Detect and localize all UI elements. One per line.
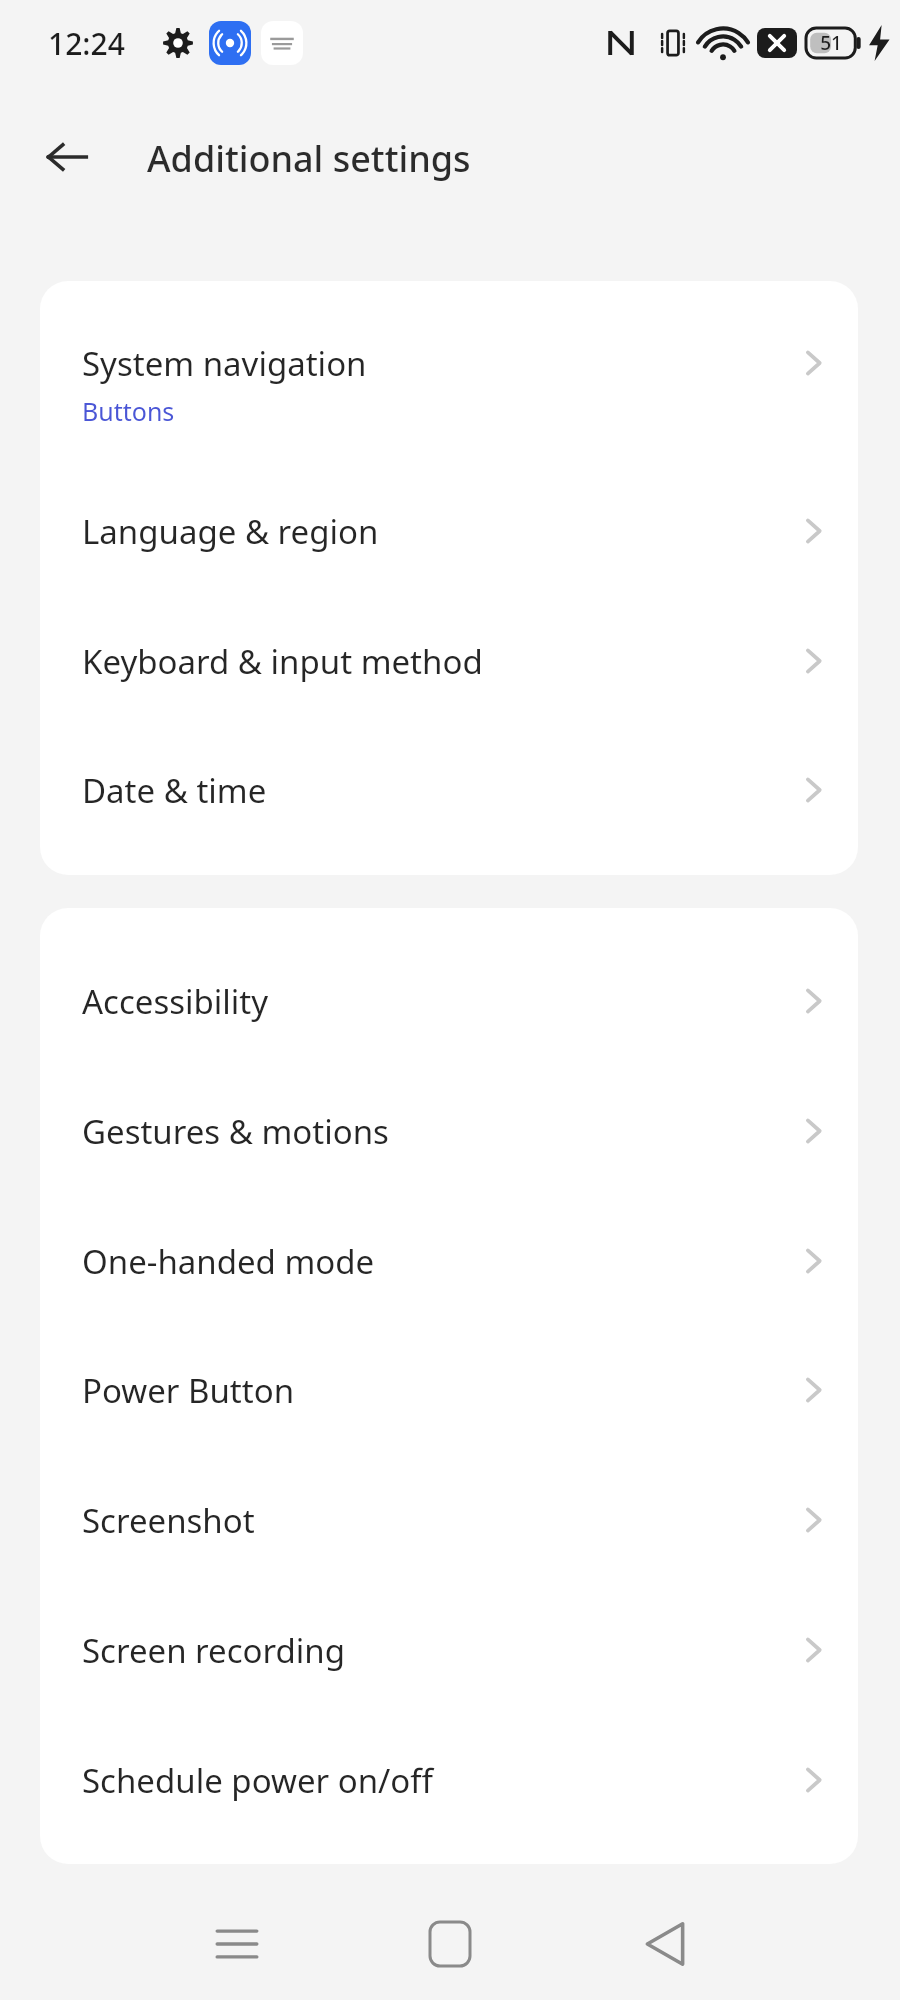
staticText: Date & time — [82, 768, 267, 813]
button[interactable]: Home — [410, 1904, 490, 1984]
button[interactable]: Language & region — [40, 466, 858, 596]
staticText: 12:24 — [48, 23, 125, 64]
staticText: Language & region — [82, 509, 379, 554]
staticText: Accessibility — [82, 979, 269, 1024]
staticText: Power Button — [82, 1368, 295, 1413]
staticText: One-handed mode — [82, 1239, 375, 1284]
staticText: Keyboard & input method — [82, 639, 483, 684]
staticText: System navigation — [82, 341, 367, 386]
button[interactable]: Schedule power on/off — [40, 1715, 858, 1845]
button[interactable]: Gestures & motions — [40, 1066, 858, 1196]
staticText: Screenshot — [82, 1498, 255, 1543]
staticText: Additional settings — [147, 134, 471, 183]
staticText: 51 — [820, 30, 842, 56]
button[interactable]: Screenshot — [40, 1455, 858, 1585]
staticText: Buttons — [82, 394, 175, 428]
button[interactable]: Accessibility — [40, 936, 858, 1066]
button[interactable]: Back — [36, 126, 98, 188]
button[interactable]: Keyboard & input method — [40, 596, 858, 726]
staticText: Schedule power on/off — [82, 1758, 434, 1803]
button[interactable]: System navigation — [40, 303, 858, 423]
button[interactable]: Date & time — [40, 725, 858, 855]
button[interactable]: Power Button — [40, 1325, 858, 1455]
button[interactable]: One-handed mode — [40, 1196, 858, 1326]
button[interactable]: Back — [625, 1904, 705, 1984]
staticText: Gestures & motions — [82, 1109, 389, 1154]
button[interactable]: Recents — [197, 1904, 277, 1984]
button[interactable]: Screen recording — [40, 1585, 858, 1715]
staticText: Screen recording — [82, 1628, 345, 1673]
